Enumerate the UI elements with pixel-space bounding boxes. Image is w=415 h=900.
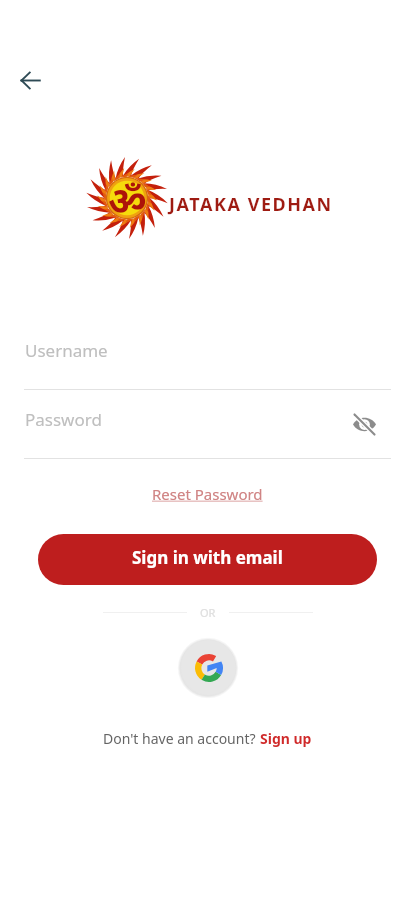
staticText: Reset Password xyxy=(152,484,263,504)
button[interactable]: Back xyxy=(10,60,50,100)
button[interactable]: Sign up xyxy=(260,729,312,748)
staticText: OR xyxy=(200,605,216,620)
button[interactable]: Reset Password xyxy=(146,481,269,507)
staticText: Sign in with email xyxy=(132,546,283,569)
staticText: Username xyxy=(25,339,108,362)
button[interactable]: Sign in with Google xyxy=(181,640,236,695)
staticText: Don't have an account? xyxy=(103,729,260,748)
button[interactable]: Show password xyxy=(346,406,383,443)
button[interactable]: Sign in with email xyxy=(38,534,377,585)
staticText: ॐ xyxy=(108,173,147,225)
staticText: JATAKA VEDHAN xyxy=(169,192,333,217)
staticText: Sign up xyxy=(260,729,312,748)
staticText: Password xyxy=(25,408,102,431)
